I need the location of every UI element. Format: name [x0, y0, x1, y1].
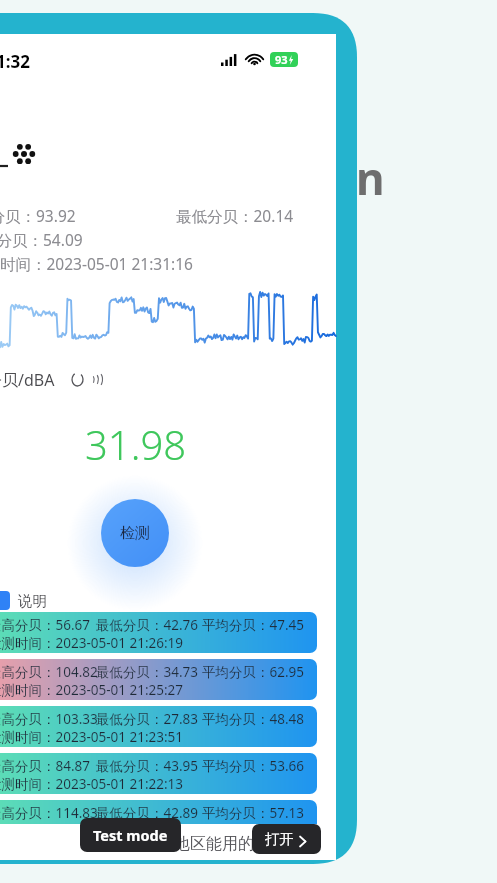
staticText: 最低分贝：34.73	[96, 663, 199, 681]
staticText: 最低分贝：42.89	[96, 804, 199, 822]
button[interactable]: Theme	[16, 146, 32, 162]
button[interactable]: Test mode	[80, 818, 181, 852]
button[interactable]: 最高分贝：56.67	[0, 612, 317, 653]
button[interactable]: Back	[0, 144, 10, 170]
staticText: 分贝/dBA	[0, 369, 55, 391]
staticText: 31.98	[85, 417, 187, 471]
button[interactable]: 最高分贝：84.87	[0, 753, 317, 794]
staticText: 检测时间：2023-05-01 21:25:27	[0, 681, 184, 699]
staticText: 检测时间：2023-05-01 21:26:19	[0, 634, 184, 652]
button[interactable]: 最高分贝：103.33	[0, 706, 317, 747]
button[interactable]: 最高分贝：104.82	[0, 659, 317, 700]
button[interactable]: 检测	[101, 499, 169, 567]
staticText: 最高分贝：104.82	[0, 663, 98, 681]
staticText: 最高分贝：84.87	[0, 757, 91, 775]
staticText: 平均分贝：48.48	[202, 710, 305, 728]
other: Ear	[70, 372, 85, 387]
staticText: 平均分贝：62.95	[202, 663, 305, 681]
staticText: 说明	[18, 592, 47, 610]
staticText: 高分贝：93.92	[0, 205, 76, 226]
staticText: Test mode	[93, 825, 168, 845]
staticText: 最高分贝：103.33	[0, 710, 98, 728]
staticText: 打开	[265, 830, 294, 848]
staticText: 平均分贝：47.45	[202, 616, 305, 634]
staticText: n	[356, 148, 385, 208]
staticText: 最低分贝：42.76	[96, 616, 199, 634]
staticText: 检测	[120, 524, 150, 543]
staticText: 最低分贝：20.14	[176, 205, 294, 226]
staticText: 最低分贝：43.95	[96, 757, 199, 775]
staticText: 最低分贝：27.83	[96, 710, 199, 728]
staticText: 最高分贝：114.83	[0, 804, 98, 822]
staticText: 1:32	[0, 50, 30, 73]
staticText: 均分贝：54.09	[0, 229, 83, 250]
staticText: 查看周边地区能用的	[110, 834, 254, 854]
staticText: 检测时间：2023-05-01 21:23:51	[0, 728, 184, 746]
button[interactable]: 最高分贝：114.83	[0, 800, 317, 841]
staticText: 平均分贝：53.66	[202, 757, 305, 775]
other: Sound waves	[90, 373, 105, 388]
staticText: 平均分贝：57.13	[202, 804, 305, 822]
staticText: 93	[275, 52, 288, 67]
staticText: 最高分贝：56.67	[0, 616, 91, 634]
staticText: 检测时间：2023-05-01 21:22:13	[0, 775, 184, 793]
staticText: 检测时间：2023-05-01 21:31:16	[0, 253, 193, 274]
button[interactable]: 打开	[252, 824, 321, 854]
staticText: 检测时间：2023-05-01 21:21:04	[0, 822, 184, 840]
button[interactable]	[0, 591, 10, 610]
